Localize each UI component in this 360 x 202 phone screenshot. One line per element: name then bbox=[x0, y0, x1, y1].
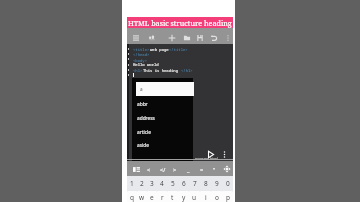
button[interactable]: 6 bbox=[178, 176, 189, 191]
staticText: q bbox=[130, 193, 134, 202]
staticText: 7 bbox=[193, 179, 197, 188]
staticText: e bbox=[150, 193, 154, 202]
staticText: <title> bbox=[133, 47, 150, 52]
staticText: </title> bbox=[169, 47, 188, 52]
staticText: HTML basic structure heading bbox=[128, 18, 232, 28]
button[interactable]: article bbox=[132, 125, 193, 139]
button[interactable]: abbr bbox=[132, 97, 193, 111]
button[interactable]: Move cursor bbox=[221, 163, 233, 175]
staticText: address bbox=[137, 115, 155, 122]
staticText: t bbox=[171, 193, 174, 202]
staticText: r bbox=[161, 193, 164, 202]
staticText: u bbox=[192, 193, 197, 202]
button[interactable]: address bbox=[132, 111, 193, 125]
staticText: o bbox=[215, 193, 219, 202]
button[interactable]: 8 bbox=[200, 176, 211, 191]
staticText: article bbox=[137, 129, 151, 136]
staticText: 2 bbox=[140, 179, 144, 188]
button[interactable]: Open folder bbox=[181, 32, 193, 44]
staticText: web page bbox=[150, 47, 169, 52]
button[interactable]: Hide keyboard bbox=[130, 163, 142, 175]
button[interactable]: Undo bbox=[208, 32, 220, 44]
staticText: = bbox=[200, 166, 204, 173]
staticText: w bbox=[139, 193, 145, 202]
staticText: 8 bbox=[204, 179, 208, 188]
button[interactable]: 3 bbox=[147, 176, 157, 191]
button[interactable]: aside bbox=[132, 138, 193, 152]
staticText: </head> bbox=[133, 52, 150, 57]
button[interactable]: 5 bbox=[167, 176, 178, 191]
button[interactable]: </ bbox=[157, 163, 169, 175]
button[interactable]: t bbox=[167, 191, 178, 202]
button[interactable]: i bbox=[200, 191, 211, 202]
staticText: 1 bbox=[130, 179, 134, 188]
staticText: < bbox=[147, 166, 151, 173]
staticText: noname.html bbox=[195, 156, 218, 161]
button[interactable]: e bbox=[147, 191, 157, 202]
staticText: > bbox=[173, 166, 177, 173]
button[interactable]: Save bbox=[194, 32, 206, 44]
button[interactable]: < bbox=[143, 163, 155, 175]
staticText: Hello world bbox=[133, 62, 159, 67]
button[interactable]: > bbox=[169, 163, 181, 175]
button[interactable]: q bbox=[127, 191, 137, 202]
staticText: i bbox=[205, 193, 207, 202]
staticText: abbr bbox=[137, 101, 148, 108]
staticText: 3 bbox=[150, 179, 154, 188]
button[interactable]: More bbox=[220, 150, 229, 159]
button[interactable]: " bbox=[208, 163, 220, 175]
staticText: aside bbox=[137, 142, 149, 149]
staticText: </h1> bbox=[181, 68, 193, 73]
staticText: <body> bbox=[133, 58, 148, 63]
staticText: 9 bbox=[215, 179, 219, 188]
button[interactable]: r bbox=[157, 191, 167, 202]
staticText: <h1> bbox=[133, 68, 143, 73]
button[interactable]: u bbox=[189, 191, 200, 202]
button[interactable]: a bbox=[136, 82, 194, 96]
button[interactable]: Menu bbox=[130, 32, 142, 44]
button[interactable]: Text format bbox=[146, 32, 158, 44]
button[interactable]: 7 bbox=[189, 176, 200, 191]
button[interactable]: HTML basic structure heading bbox=[127, 17, 233, 28]
button[interactable]: _ bbox=[182, 163, 194, 175]
staticText: 6 bbox=[182, 179, 186, 188]
button[interactable]: More options bbox=[222, 32, 234, 44]
button[interactable]: 0 bbox=[222, 176, 233, 191]
button[interactable]: 9 bbox=[211, 176, 222, 191]
button[interactable]: o bbox=[211, 191, 222, 202]
staticText: 4 bbox=[160, 179, 164, 188]
button[interactable]: 4 bbox=[157, 176, 167, 191]
button[interactable]: p bbox=[222, 191, 233, 202]
button[interactable]: = bbox=[196, 163, 208, 175]
staticText: _ bbox=[187, 166, 190, 173]
staticText: p bbox=[226, 193, 230, 202]
button[interactable]: Play bbox=[206, 150, 215, 159]
button[interactable]: 2 bbox=[137, 176, 147, 191]
staticText: 0 bbox=[226, 179, 230, 188]
button[interactable]: New file bbox=[166, 32, 178, 44]
button[interactable]: 1 bbox=[127, 176, 137, 191]
staticText: 5 bbox=[171, 179, 175, 188]
staticText: This is heading bbox=[143, 68, 181, 73]
button[interactable]: w bbox=[137, 191, 147, 202]
staticText: </ bbox=[160, 166, 166, 173]
staticText: y bbox=[182, 193, 186, 202]
staticText: " bbox=[213, 166, 216, 173]
staticText: a bbox=[140, 86, 143, 92]
button[interactable]: y bbox=[178, 191, 189, 202]
